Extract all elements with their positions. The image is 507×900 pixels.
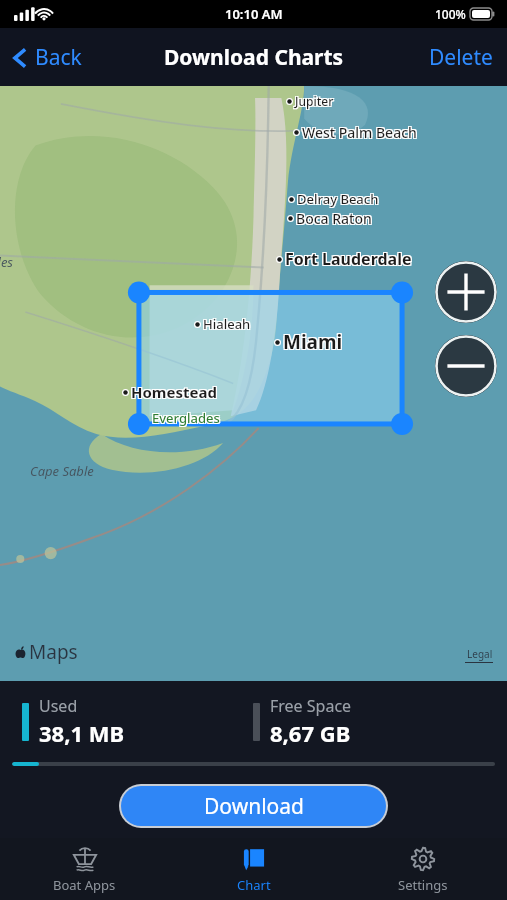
staticText: 8,67 GB	[270, 718, 351, 748]
staticText: Miami	[284, 330, 344, 356]
staticText: Delray Beach	[297, 190, 379, 208]
staticText: Free Space	[270, 695, 352, 717]
staticText: Jupiter	[295, 93, 334, 109]
staticText: West Palm Beach	[302, 123, 417, 142]
staticText: West Palm Beach	[303, 122, 418, 141]
staticText: Hialeah	[202, 314, 250, 332]
staticText: Boat Apps	[53, 876, 116, 894]
staticText: Miami	[282, 328, 342, 354]
staticText: 38,1 MB	[39, 718, 125, 748]
staticText: Fort Lauderdale	[286, 249, 413, 271]
staticText: Miami	[282, 330, 342, 356]
staticText: Jupiter	[296, 92, 335, 108]
button[interactable]: Delete	[415, 33, 507, 82]
staticText: Boca Raton	[295, 208, 371, 227]
staticText: Everglades	[151, 410, 219, 428]
staticText: ples	[0, 253, 13, 271]
staticText: Homestead	[131, 382, 217, 402]
staticText: Homestead	[132, 383, 218, 403]
staticText: Jupiter	[296, 94, 335, 110]
staticText: Fort Lauderdale	[285, 248, 412, 270]
staticText: Miami	[284, 328, 344, 354]
staticText: Fort Lauderdale	[286, 247, 413, 269]
staticText: Maps	[29, 639, 78, 665]
button[interactable]: Chart	[169, 838, 338, 900]
staticText: Delete	[429, 43, 493, 72]
button[interactable]: Legal	[467, 647, 493, 661]
staticText: Hialeah	[204, 316, 252, 334]
staticText: Delray Beach	[296, 191, 378, 209]
staticText: Cape Sable	[30, 462, 94, 480]
staticText: Settings	[398, 876, 448, 894]
staticText: Fort Lauderdale	[284, 249, 411, 271]
button[interactable]: Download	[121, 786, 386, 826]
staticText: Delray Beach	[298, 189, 380, 207]
staticText: Homestead	[130, 383, 216, 403]
staticText: Delray Beach	[298, 191, 380, 209]
staticText: Hialeah	[202, 316, 250, 334]
staticText: Jupiter	[294, 94, 333, 110]
staticText: Jupiter	[294, 92, 333, 108]
staticText: West Palm Beach	[303, 124, 418, 143]
staticText: Chart	[237, 876, 271, 894]
staticText: Hialeah	[203, 315, 251, 333]
staticText: Miami	[283, 329, 343, 355]
staticText: 100%	[435, 6, 466, 22]
staticText: West Palm Beach	[301, 124, 416, 143]
button[interactable]: Boat Apps	[0, 838, 169, 900]
staticText: Legal	[467, 647, 493, 661]
staticText: Everglades	[151, 408, 219, 426]
staticText: Homestead	[130, 381, 216, 401]
staticText: Boca Raton	[297, 210, 373, 229]
staticText: Hialeah	[204, 314, 252, 332]
staticText: 10:10 AM	[225, 5, 283, 23]
staticText: Everglades	[153, 410, 221, 428]
staticText: Download Charts	[164, 43, 344, 72]
staticText: Everglades	[153, 408, 221, 426]
staticText: Everglades	[152, 409, 220, 427]
staticText: Boca Raton	[296, 209, 372, 228]
staticText: Homestead	[132, 381, 218, 401]
staticText: Back	[35, 43, 82, 72]
staticText: Delray Beach	[296, 189, 378, 207]
staticText: Boca Raton	[297, 208, 373, 227]
button[interactable]: Zoom in	[435, 261, 497, 323]
staticText: Download	[204, 792, 304, 821]
staticText: Used	[39, 695, 78, 717]
staticText: Boca Raton	[295, 210, 371, 229]
button[interactable]: Back	[0, 35, 92, 80]
button[interactable]: Zoom out	[435, 335, 497, 397]
button[interactable]: Settings	[338, 838, 507, 900]
staticText: Fort Lauderdale	[284, 247, 411, 269]
staticText: West Palm Beach	[301, 122, 416, 141]
